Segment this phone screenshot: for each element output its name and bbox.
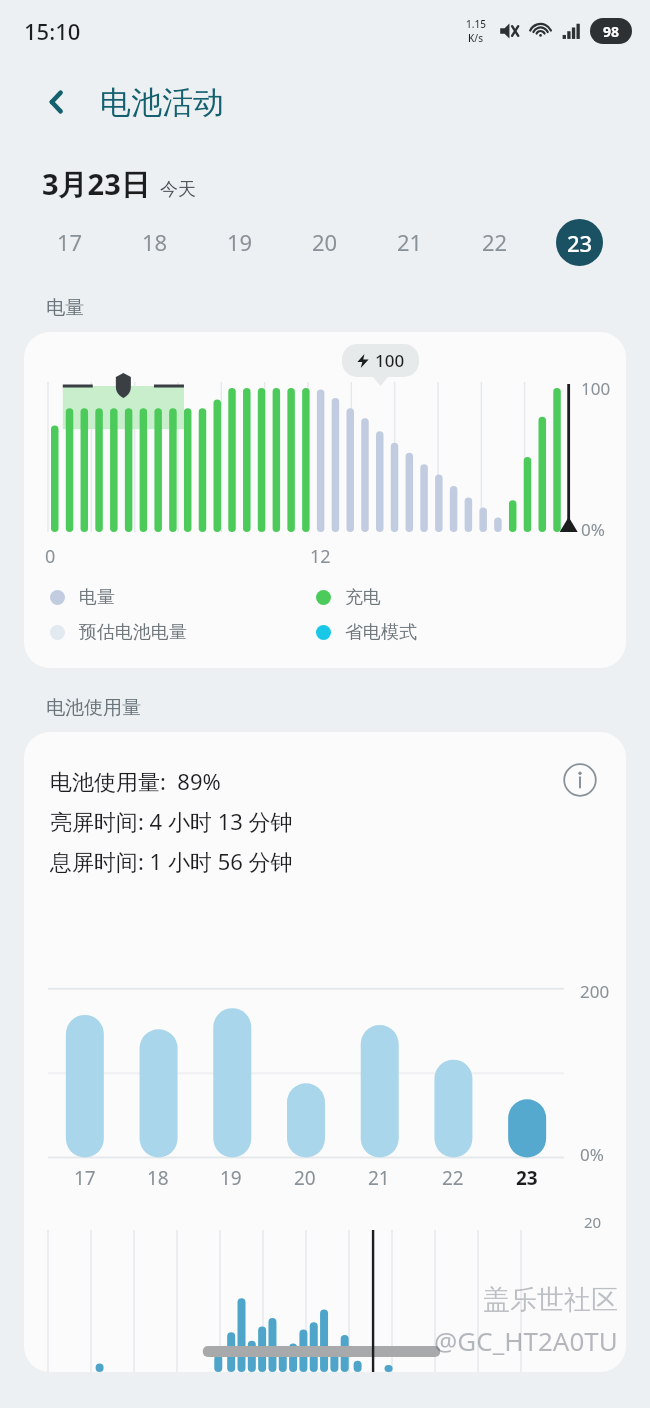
staticText: 100 xyxy=(581,377,611,400)
button[interactable]: Info xyxy=(560,760,600,800)
staticText: 20 xyxy=(294,1165,316,1191)
button[interactable]: 21 xyxy=(367,204,452,280)
staticText: 预估电池电量 xyxy=(79,621,187,644)
staticText: 20 xyxy=(312,227,338,257)
staticText: 12 xyxy=(310,544,331,569)
staticText: 充电 xyxy=(345,586,381,609)
staticText: 23 xyxy=(567,228,593,258)
staticText: 电池使用量: 89% xyxy=(50,766,221,796)
staticText: 电池使用量 xyxy=(46,696,141,720)
staticText: 200 xyxy=(580,980,610,1003)
staticText: 18 xyxy=(142,227,168,257)
button[interactable]: 100 xyxy=(24,332,626,668)
button[interactable]: 18 xyxy=(112,204,197,280)
staticText: 18 xyxy=(147,1165,169,1191)
staticText: 17 xyxy=(57,227,83,257)
button[interactable]: 20 xyxy=(282,204,367,280)
staticText: 电量 xyxy=(46,296,84,320)
staticText: 电池活动 xyxy=(100,83,224,122)
button[interactable]: 17 xyxy=(28,204,112,280)
button[interactable]: 23 xyxy=(537,204,622,280)
staticText: 100 xyxy=(375,349,405,372)
staticText: 20 xyxy=(584,1212,602,1232)
staticText: 3月23日 xyxy=(42,164,150,204)
staticText: 0 xyxy=(45,544,56,569)
staticText: 0% xyxy=(580,1143,604,1166)
staticText: @GC_HT2A0TU xyxy=(434,1323,618,1358)
button[interactable]: Back xyxy=(34,79,80,125)
staticText: 盖乐世社区 xyxy=(483,1283,618,1317)
button[interactable]: 电池使用量: 89% xyxy=(24,732,626,1372)
staticText: 15:10 xyxy=(24,16,81,46)
staticText: 19 xyxy=(220,1165,242,1191)
staticText: 21 xyxy=(397,227,423,257)
staticText: K/s xyxy=(468,31,484,45)
staticText: 23 xyxy=(516,1165,538,1191)
staticText: 98 xyxy=(603,22,620,41)
staticText: 0% xyxy=(581,518,605,541)
staticText: 今天 xyxy=(160,178,196,201)
staticText: 19 xyxy=(227,227,253,257)
staticText: 息屏时间: 1 小时 56 分钟 xyxy=(50,846,293,876)
staticText: 22 xyxy=(442,1165,464,1191)
staticText: 省电模式 xyxy=(345,621,417,644)
staticText: 亮屏时间: 4 小时 13 分钟 xyxy=(50,806,293,836)
staticText: 22 xyxy=(482,227,508,257)
staticText: 1.15 xyxy=(466,17,486,31)
button[interactable]: 22 xyxy=(452,204,537,280)
staticText: 21 xyxy=(368,1165,390,1191)
staticText: 电量 xyxy=(79,586,115,609)
button[interactable]: 19 xyxy=(197,204,282,280)
staticText: 17 xyxy=(74,1165,96,1191)
